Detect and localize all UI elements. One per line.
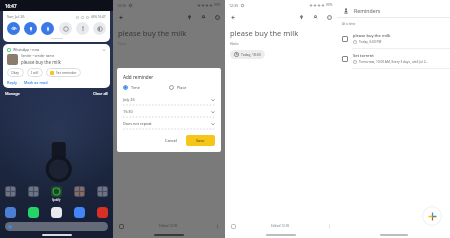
button[interactable] <box>51 186 62 197</box>
staticText: Today, 6:00 PM <box>359 40 382 44</box>
button[interactable] <box>5 222 108 231</box>
button[interactable]: Pin <box>185 13 193 21</box>
staticText: Edited 12:35 <box>159 224 178 228</box>
button[interactable]: Reply <box>7 80 17 85</box>
staticText: Does not repeat <box>123 121 152 126</box>
staticText: 12:35 <box>229 3 239 8</box>
button[interactable]: WhatsApp • now <box>3 44 110 88</box>
button[interactable]: Quick setting <box>76 22 89 35</box>
staticText: 99% <box>326 3 333 7</box>
button[interactable] <box>5 186 16 197</box>
button[interactable]: Back <box>229 13 237 21</box>
button[interactable]: App <box>28 207 39 218</box>
button[interactable]: Today, 18:00 <box>230 50 265 59</box>
button[interactable]: Menu <box>342 7 350 15</box>
staticText: July 26 <box>123 97 135 102</box>
button[interactable]: App <box>51 207 62 218</box>
button[interactable] <box>28 186 39 197</box>
button[interactable]: Place <box>169 85 215 90</box>
button[interactable]: Add <box>229 222 237 230</box>
staticText: Edited 12:35 <box>271 224 290 228</box>
button[interactable]: Mark done <box>337 29 450 48</box>
button[interactable]: Does not repeat <box>123 118 215 130</box>
staticText: Sender • sender name <box>21 54 55 58</box>
staticText: At a time <box>342 22 356 26</box>
button[interactable] <box>74 186 85 197</box>
button[interactable]: Cancel <box>161 135 182 146</box>
staticText: Note <box>230 41 239 46</box>
button[interactable]: More options <box>325 222 333 230</box>
staticText: Add reminder <box>123 74 154 80</box>
staticText: 15:30 <box>123 109 133 114</box>
button[interactable]: July 26 <box>123 94 215 106</box>
button[interactable]: Quick setting <box>24 22 37 35</box>
button[interactable]: Mark as read <box>24 80 48 85</box>
staticText: Set torrent <box>353 53 374 58</box>
button[interactable]: Clear all <box>93 91 108 96</box>
button[interactable]: Archive <box>325 13 333 21</box>
button[interactable] <box>97 186 108 197</box>
staticText: please buy the milk <box>230 28 299 38</box>
button[interactable]: Quick setting <box>59 22 72 35</box>
staticText: Okay <box>11 70 20 75</box>
button[interactable]: Add <box>117 222 125 230</box>
button[interactable]: Quick setting <box>7 22 20 35</box>
staticText: Today, 18:00 <box>241 52 261 57</box>
staticText: Set reminder <box>56 70 77 75</box>
staticText: Tomorrow, 10:00 AM, Every 3 days, until … <box>359 60 429 64</box>
staticText: please buy the milk <box>353 33 391 38</box>
staticText: Note <box>118 41 127 46</box>
staticText: 16:47 <box>5 3 17 9</box>
button[interactable]: Mark done <box>342 36 348 42</box>
staticText: 46% 16:47 <box>91 15 106 19</box>
staticText: WhatsApp • now <box>13 47 40 52</box>
button[interactable]: Back <box>117 13 125 21</box>
staticText: Reminders <box>354 7 381 14</box>
button[interactable]: Create reminder <box>422 206 442 226</box>
button[interactable]: App <box>74 207 85 218</box>
button[interactable]: Person <box>199 13 207 21</box>
button[interactable]: I will <box>27 68 43 77</box>
button[interactable]: Time <box>123 85 169 90</box>
button[interactable]: 15:30 <box>123 106 215 118</box>
staticText: Place <box>177 85 187 90</box>
button[interactable]: App <box>5 207 16 218</box>
staticText: 12:35 <box>117 3 127 8</box>
button[interactable]: Quick setting <box>41 22 54 35</box>
staticText: please buy the milk <box>21 59 61 65</box>
button[interactable]: App <box>97 207 108 218</box>
button[interactable]: Mark done <box>342 56 348 62</box>
button[interactable]: Manage <box>5 91 20 96</box>
button[interactable]: More options <box>213 222 221 230</box>
button[interactable]: Okay <box>7 68 24 77</box>
staticText: 99% <box>214 3 221 7</box>
button[interactable]: Save <box>186 135 215 146</box>
button[interactable]: Mark done <box>337 49 450 68</box>
staticText: Save <box>196 138 205 143</box>
staticText: Sun, Jul 26 <box>7 14 25 19</box>
staticText: I will <box>31 70 39 75</box>
staticText: Spotify <box>52 198 61 202</box>
staticText: Time <box>131 85 140 90</box>
staticText: please buy the milk <box>118 28 187 38</box>
button[interactable]: Quick setting <box>93 22 106 35</box>
button[interactable]: Archive <box>213 13 221 21</box>
button[interactable]: Pin <box>297 13 305 21</box>
button[interactable]: Set reminder <box>46 68 81 77</box>
staticText: Cancel <box>165 138 178 143</box>
button[interactable]: Person <box>311 13 319 21</box>
